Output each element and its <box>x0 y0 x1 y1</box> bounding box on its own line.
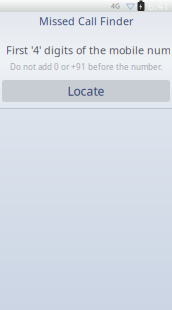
staticText: Do not add 0 or +91 before the number. <box>10 62 162 72</box>
staticText: First '4' digits of the mobile number <box>6 43 172 57</box>
staticText: 4G <box>111 2 120 10</box>
staticText: 6:41 <box>148 0 169 13</box>
staticText: Missed Call Finder <box>39 14 133 28</box>
button[interactable]: Locate <box>2 80 170 102</box>
staticText: Locate <box>67 83 104 99</box>
